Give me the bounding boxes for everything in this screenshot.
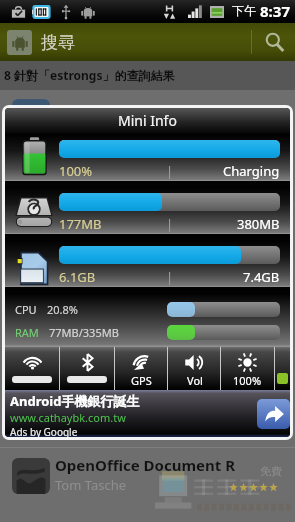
button[interactable]	[275, 347, 290, 390]
staticText: 100%	[59, 162, 93, 180]
button[interactable]: 搜尋	[0, 23, 295, 61]
staticText: Ads by Google	[10, 425, 78, 437]
staticText: Vol	[187, 373, 203, 388]
staticText: Mini Info	[118, 111, 177, 130]
button[interactable]: Brightness	[221, 347, 274, 390]
button[interactable]: 177MB	[5, 187, 290, 240]
button[interactable]: GPS	[115, 347, 167, 390]
staticText: GPS	[131, 373, 152, 388]
staticText: 8:37	[260, 1, 290, 21]
staticText: 100%	[233, 373, 262, 388]
staticText: Tom Tasche	[55, 476, 127, 494]
staticText: OpenOffice Document R	[55, 455, 236, 475]
button[interactable]: Volume	[168, 347, 220, 390]
button[interactable]: OpenOffice Document R	[0, 440, 295, 522]
staticText: Android手機銀行誕生	[10, 392, 140, 410]
button[interactable]: Android手機銀行誕生	[5, 390, 290, 437]
staticText: |	[166, 162, 174, 180]
button[interactable]: Wifi	[5, 347, 59, 390]
staticText: 7.4GB	[243, 268, 280, 286]
staticText: RAM	[15, 325, 39, 340]
button[interactable]	[0, 90, 295, 440]
staticText: 免費	[260, 464, 282, 478]
staticText: 177MB	[59, 215, 102, 233]
staticText: 搜尋	[41, 32, 75, 53]
staticText: 77MB/335MB	[49, 325, 119, 340]
staticText: |	[166, 268, 174, 286]
staticText: 下午	[232, 3, 256, 18]
button[interactable]: Search	[253, 23, 295, 61]
staticText: 6.1GB	[59, 268, 96, 286]
button[interactable]: 100%	[5, 134, 290, 187]
button[interactable]: Bluetooth	[60, 347, 114, 390]
staticText: |	[166, 215, 174, 233]
staticText: 380MB	[237, 215, 280, 233]
staticText: 8 針對「estrongs」的查詢結果	[4, 67, 175, 83]
staticText: www.cathaybk.com.tw	[10, 410, 126, 425]
staticText: Charging	[223, 162, 280, 180]
staticText: 20.8%	[47, 302, 78, 317]
staticText: CPU	[15, 302, 37, 317]
button[interactable]: Open ad	[257, 399, 290, 429]
button[interactable]: 6.1GB	[5, 240, 290, 293]
